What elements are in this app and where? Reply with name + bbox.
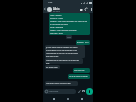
staticText: Nom : Boulet Prénom : Alicia Origine : S… <box>50 14 88 35</box>
staticText: Message <box>49 90 59 93</box>
button[interactable]: Recent apps <box>51 96 57 102</box>
button[interactable]: Ok je te redis à quelle heure <box>68 74 90 79</box>
staticText: en ligne <box>53 10 60 12</box>
button[interactable]: Back <box>43 7 47 11</box>
button[interactable]: Profile photo <box>47 7 52 12</box>
staticText: 08:14 <box>85 42 89 44</box>
button[interactable]: Home <box>65 96 71 102</box>
button[interactable]: Message <box>44 89 76 94</box>
staticText: Maintenant je vais laisser un photo de m… <box>46 59 79 64</box>
button[interactable]: Je suis allée chez le coiffeur ce matin … <box>45 45 85 58</box>
button[interactable]: Maintenant je vais laisser un photo de m… <box>45 58 83 64</box>
button[interactable]: Video call <box>79 7 84 12</box>
button[interactable]: Attach <box>77 89 81 93</box>
staticText: En votre rage <box>46 66 58 69</box>
button[interactable]: Oui bien sûr <box>73 68 90 73</box>
button[interactable]: Bonjour <box>76 40 90 45</box>
button[interactable]: HIER <box>66 35 72 39</box>
staticText: Ok je te redis à quelle heure <box>69 75 89 79</box>
button[interactable]: En votre rage <box>45 65 60 69</box>
button[interactable]: Alicia <box>53 7 79 12</box>
staticText: Je suis allée chez le coiffeur ce matin … <box>46 46 78 58</box>
staticText: Oui bien sûr <box>74 69 85 72</box>
button[interactable]: Record voice message <box>86 88 93 95</box>
button[interactable]: Camera <box>81 89 85 93</box>
button[interactable]: More options <box>89 7 93 11</box>
staticText: Très bien merci à toute suite <box>46 82 71 85</box>
button[interactable]: Nom : Boulet Prénom : Alicia Origine : S… <box>49 13 90 35</box>
staticText: Bonjour <box>77 41 84 44</box>
staticText: Alicia <box>53 7 60 10</box>
button[interactable]: Back <box>79 96 85 102</box>
staticText: HIER <box>67 36 71 38</box>
button[interactable]: Voice call <box>84 7 89 12</box>
staticText: 1:09 <box>48 1 53 4</box>
button[interactable]: Très bien merci à toute suite <box>45 81 78 86</box>
